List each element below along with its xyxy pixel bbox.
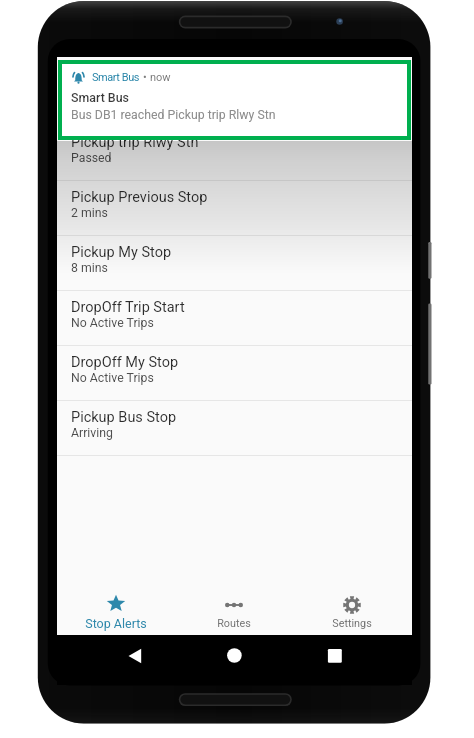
staticText: Stop Alerts <box>85 616 147 631</box>
button[interactable]: Stop Alerts <box>57 580 175 635</box>
button[interactable]: Pickup Bus Stop <box>57 400 412 455</box>
staticText: Smart Bus <box>92 71 140 84</box>
staticText: Pickup trip Rlwy Stn <box>71 134 199 151</box>
button[interactable]: Settings <box>293 580 411 635</box>
button[interactable]: Pickup Previous Stop <box>57 180 412 235</box>
staticText: Smart Bus <box>71 90 129 105</box>
staticText: No Active Trips <box>71 371 154 385</box>
staticText: Bus DB1 reached Pickup trip Rlwy Stn <box>71 108 276 122</box>
staticText: Pickup Bus Stop <box>71 409 177 426</box>
staticText: Arriving <box>71 426 113 440</box>
button[interactable]: DropOff My Stop <box>57 345 412 400</box>
staticText: 2 mins <box>71 206 108 220</box>
staticText: DropOff My Stop <box>71 354 179 371</box>
staticText: Settings <box>332 617 372 630</box>
staticText: Passed <box>71 151 112 165</box>
staticText: • <box>143 71 147 84</box>
staticText: Routes <box>217 617 251 630</box>
button[interactable]: Pickup My Stop <box>57 235 412 290</box>
button[interactable]: Routes <box>175 580 293 635</box>
button[interactable]: Smart Bus <box>62 64 407 136</box>
staticText: No Active Trips <box>71 316 154 330</box>
staticText: now <box>150 71 171 84</box>
staticText: Pickup Previous Stop <box>71 189 208 206</box>
button[interactable]: Pickup trip Rlwy Stn <box>57 125 412 180</box>
staticText: Pickup My Stop <box>71 244 172 261</box>
staticText: DropOff Trip Start <box>71 299 185 316</box>
button[interactable]: DropOff Trip Start <box>57 290 412 345</box>
staticText: 8 mins <box>71 261 108 275</box>
